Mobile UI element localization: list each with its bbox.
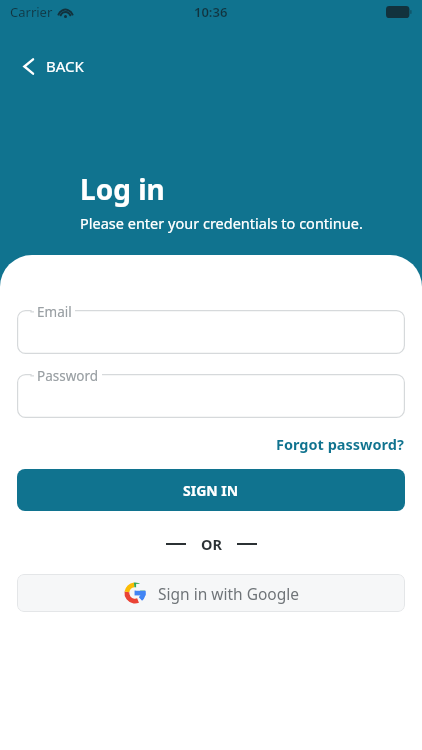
button[interactable]: Forgot password? bbox=[274, 432, 406, 456]
button[interactable]: Password bbox=[17, 374, 405, 418]
staticText: Password bbox=[37, 367, 99, 385]
staticText: Log in bbox=[80, 170, 165, 208]
staticText: OR bbox=[201, 534, 222, 554]
button[interactable]: Sign in with Google bbox=[17, 574, 405, 612]
staticText: Carrier bbox=[10, 3, 53, 21]
staticText: BACK bbox=[46, 56, 84, 76]
button[interactable]: Back bbox=[16, 50, 90, 82]
staticText: Please enter your credentials to continu… bbox=[80, 213, 363, 233]
staticText: Email bbox=[37, 303, 72, 321]
button[interactable]: Email bbox=[17, 310, 405, 354]
staticText: SIGN IN bbox=[183, 481, 239, 500]
button[interactable]: SIGN IN bbox=[17, 469, 405, 511]
staticText: Forgot password? bbox=[276, 434, 404, 454]
staticText: 10:36 bbox=[194, 3, 228, 21]
staticText: Sign in with Google bbox=[158, 583, 299, 604]
